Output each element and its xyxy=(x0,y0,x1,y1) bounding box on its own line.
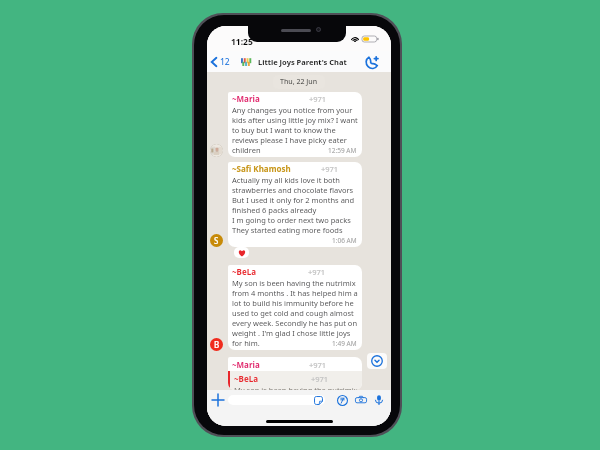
button[interactable]: Attach xyxy=(209,391,227,409)
button[interactable]: 12 xyxy=(209,53,232,71)
staticText: Actually my all kids love it both strawb… xyxy=(232,175,358,235)
button[interactable]: Stickers xyxy=(314,396,323,405)
button[interactable]: ~Safi Khamosh xyxy=(228,162,362,247)
staticText: S xyxy=(214,235,219,246)
button[interactable]: ~Maria xyxy=(228,357,362,390)
staticText: ~Safi Khamosh xyxy=(232,163,291,174)
staticText: ~Maria xyxy=(232,359,260,370)
staticText: ~Maria xyxy=(232,93,260,104)
staticText: ~BeLa xyxy=(234,373,258,384)
button[interactable]: Payment xyxy=(333,391,351,409)
staticText: +971 xyxy=(309,94,327,104)
button[interactable]: Camera xyxy=(352,391,370,409)
staticText: Little Joys Parent's Chat xyxy=(258,57,347,67)
button[interactable]: Scroll to bottom xyxy=(367,353,387,369)
button[interactable]: ~BeLa xyxy=(228,265,362,350)
staticText: 1:06 AM xyxy=(332,236,357,245)
staticText: 12 xyxy=(220,56,230,68)
staticText: ~BeLa xyxy=(232,266,256,277)
staticText: My son is been having the nutrimix from … xyxy=(232,278,358,348)
button[interactable]: Audio call xyxy=(361,52,381,72)
staticText: 1:49 AM xyxy=(332,339,357,348)
button[interactable]: Stickers xyxy=(228,395,325,405)
staticText: +971 xyxy=(308,267,326,277)
staticText: Thu, 22 Jun xyxy=(280,77,318,87)
button[interactable]: Thu, 22 Jun xyxy=(280,77,318,87)
button[interactable]: ~Maria xyxy=(228,92,362,157)
staticText: 11:25 xyxy=(231,36,253,48)
staticText: My son is been having the nutrimix from … xyxy=(234,385,358,390)
staticText: B xyxy=(214,339,220,350)
staticText: 12:59 AM xyxy=(328,146,357,155)
staticText: +971 xyxy=(309,360,327,370)
staticText: +971 xyxy=(311,374,329,384)
button[interactable]: Heart reaction xyxy=(234,247,249,258)
staticText: +971 xyxy=(321,164,339,174)
button[interactable]: Voice message xyxy=(370,391,388,409)
staticText: Any changes you notice from your kids af… xyxy=(232,105,358,155)
